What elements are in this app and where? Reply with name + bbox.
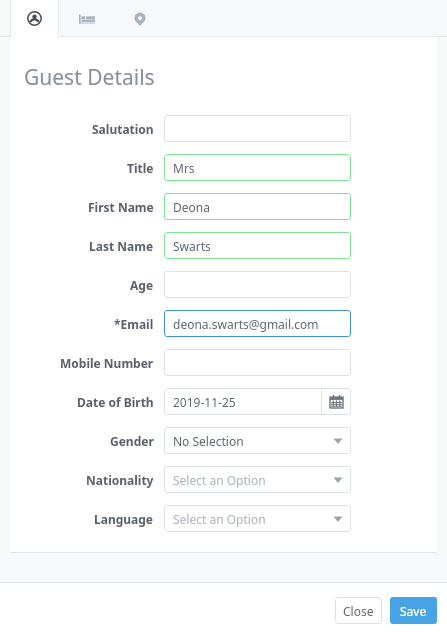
button[interactable]: Close — [335, 597, 382, 624]
button[interactable] — [164, 115, 351, 142]
staticText: Title — [127, 160, 154, 176]
staticText: Guest Details — [24, 63, 155, 92]
staticText: Gender — [110, 433, 154, 449]
staticText: *Email — [114, 316, 154, 332]
button[interactable]: Room tab — [59, 0, 114, 37]
staticText: Nationality — [86, 472, 154, 488]
staticText: Select an Option — [173, 511, 266, 527]
button[interactable]: Swarts — [164, 232, 351, 259]
staticText: First Name — [88, 199, 154, 215]
staticText: Save — [400, 603, 427, 619]
staticText: Age — [130, 277, 154, 293]
button[interactable]: deona.swarts@gmail.com — [164, 310, 351, 337]
staticText: Last Name — [89, 238, 154, 254]
button[interactable] — [164, 349, 351, 376]
staticText: 2019-11-25 — [173, 394, 236, 410]
staticText: Deona — [173, 199, 210, 215]
staticText: Mobile Number — [60, 355, 154, 371]
staticText: Swarts — [173, 238, 211, 254]
staticText: Mrs — [173, 160, 195, 176]
button[interactable]: Save — [390, 597, 437, 624]
button[interactable]: Select an Option — [164, 505, 351, 532]
button[interactable]: No Selection — [164, 427, 351, 454]
staticText: Salutation — [92, 121, 154, 137]
staticText: deona.swarts@gmail.com — [173, 316, 319, 332]
staticText: Date of Birth — [77, 394, 154, 410]
button[interactable]: Deona — [164, 193, 351, 220]
staticText: Close — [343, 603, 374, 619]
other: Pick date — [322, 388, 351, 415]
button[interactable]: Mrs — [164, 154, 351, 181]
button[interactable]: Select an Option — [164, 466, 351, 493]
button[interactable]: Location tab — [114, 0, 166, 37]
button[interactable] — [164, 271, 351, 298]
staticText: No Selection — [173, 433, 244, 449]
staticText: Select an Option — [173, 472, 266, 488]
button[interactable]: Guest details tab — [10, 0, 59, 37]
button[interactable]: 2019-11-25 — [164, 388, 351, 415]
staticText: Language — [94, 511, 154, 527]
